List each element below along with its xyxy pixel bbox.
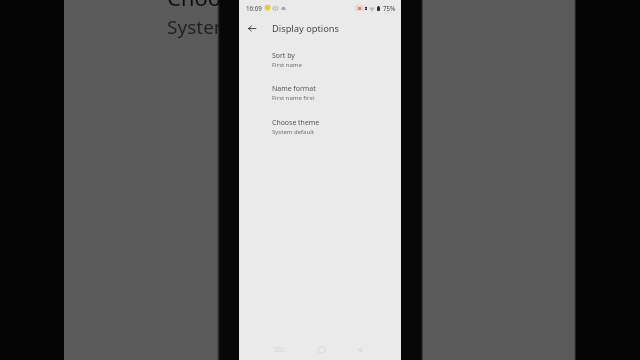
staticText: 75%	[383, 5, 396, 12]
button[interactable]: Name format	[239, 83, 401, 105]
staticText: Choose theme	[272, 119, 320, 127]
staticText: 16:09	[246, 5, 262, 12]
staticText: Sort by	[272, 52, 295, 60]
button[interactable]: Sort by	[239, 50, 401, 72]
button[interactable]: Navigate up	[243, 19, 261, 37]
button[interactable]: Choose theme	[239, 117, 401, 139]
staticText: First name	[272, 61, 302, 68]
staticText: System default	[167, 15, 300, 37]
staticText: Display options	[272, 23, 340, 34]
button[interactable]: Recent apps	[271, 341, 288, 358]
button[interactable]: Home	[313, 341, 330, 358]
staticText: Choose theme	[167, 0, 319, 12]
staticText: Name format	[272, 85, 316, 93]
staticText: System default	[272, 128, 314, 135]
staticText: First name first	[272, 94, 315, 101]
